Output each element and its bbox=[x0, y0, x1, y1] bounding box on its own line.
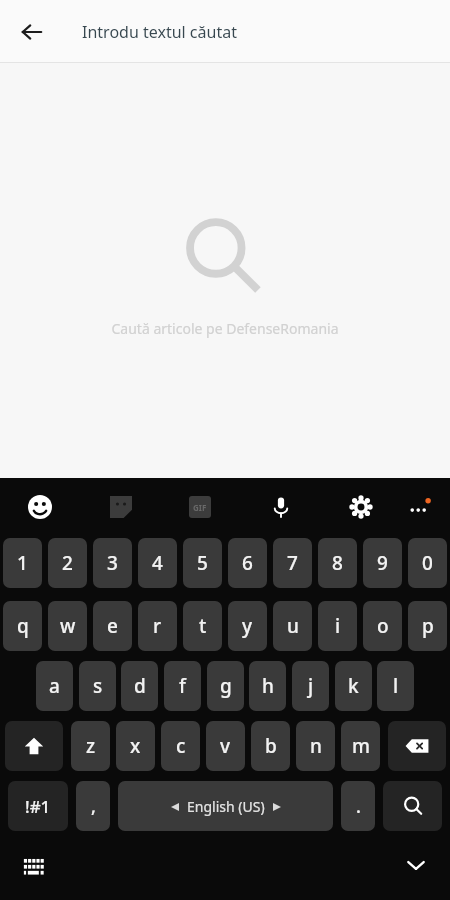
staticText: Introdu textul căutat bbox=[82, 21, 237, 43]
staticText: b bbox=[265, 733, 277, 759]
staticText: i bbox=[335, 613, 341, 639]
button[interactable]: 4 bbox=[138, 538, 177, 588]
staticText: 0 bbox=[422, 550, 433, 576]
button[interactable]: Emoji bbox=[18, 485, 62, 529]
button[interactable]: 8 bbox=[318, 538, 357, 588]
staticText: 3 bbox=[107, 550, 118, 576]
button[interactable]: Voice input bbox=[259, 485, 303, 529]
button[interactable]: m bbox=[341, 721, 380, 771]
staticText: 2 bbox=[62, 550, 73, 576]
staticText: l bbox=[393, 673, 399, 699]
staticText: g bbox=[220, 673, 232, 699]
staticText: 8 bbox=[332, 550, 343, 576]
staticText: 1 bbox=[17, 550, 28, 576]
button[interactable]: w bbox=[48, 601, 87, 651]
staticText: s bbox=[93, 673, 103, 699]
staticText: 6 bbox=[242, 550, 253, 576]
button[interactable]: . bbox=[341, 781, 375, 831]
button[interactable]: 3 bbox=[93, 538, 132, 588]
button[interactable]: 7 bbox=[273, 538, 312, 588]
staticText: f bbox=[179, 673, 186, 699]
staticText: d bbox=[134, 673, 146, 699]
staticText: p bbox=[422, 613, 434, 639]
button[interactable]: k bbox=[335, 661, 372, 711]
button[interactable]: Space bbox=[118, 781, 333, 831]
staticText: u bbox=[287, 613, 299, 639]
button[interactable]: Backspace bbox=[388, 721, 446, 771]
button[interactable]: !#1 bbox=[8, 781, 68, 831]
staticText: c bbox=[176, 733, 186, 759]
button[interactable]: i bbox=[318, 601, 357, 651]
button[interactable]: y bbox=[228, 601, 267, 651]
staticText: t bbox=[199, 613, 207, 639]
staticText: GIF bbox=[193, 502, 207, 513]
button[interactable]: g bbox=[207, 661, 244, 711]
button[interactable]: 2 bbox=[48, 538, 87, 588]
button[interactable]: a bbox=[36, 661, 73, 711]
button[interactable]: z bbox=[71, 721, 110, 771]
button[interactable]: More options bbox=[397, 485, 441, 529]
button[interactable]: b bbox=[251, 721, 290, 771]
staticText: x bbox=[130, 733, 141, 759]
button[interactable]: 0 bbox=[408, 538, 447, 588]
staticText: English (US) bbox=[187, 797, 265, 816]
button[interactable]: d bbox=[121, 661, 158, 711]
button[interactable]: Search bbox=[383, 781, 442, 831]
staticText: . bbox=[356, 794, 361, 819]
button[interactable]: s bbox=[79, 661, 116, 711]
button[interactable]: h bbox=[249, 661, 286, 711]
button[interactable]: c bbox=[161, 721, 200, 771]
button[interactable]: p bbox=[408, 601, 447, 651]
staticText: 7 bbox=[287, 550, 298, 576]
staticText: h bbox=[262, 673, 274, 699]
staticText: y bbox=[242, 613, 253, 639]
button[interactable]: x bbox=[116, 721, 155, 771]
button[interactable]: l bbox=[377, 661, 414, 711]
staticText: k bbox=[348, 673, 359, 699]
button[interactable]: e bbox=[93, 601, 132, 651]
button[interactable]: v bbox=[206, 721, 245, 771]
button[interactable]: j bbox=[292, 661, 329, 711]
button[interactable]: 9 bbox=[363, 538, 402, 588]
staticText: a bbox=[49, 673, 60, 699]
staticText: n bbox=[310, 733, 322, 759]
button[interactable]: , bbox=[76, 781, 110, 831]
button[interactable]: Back bbox=[12, 12, 52, 52]
button[interactable]: f bbox=[164, 661, 201, 711]
staticText: q bbox=[17, 613, 29, 639]
button[interactable]: n bbox=[296, 721, 335, 771]
staticText: e bbox=[107, 613, 118, 639]
button[interactable]: Shift bbox=[5, 721, 63, 771]
button[interactable]: o bbox=[363, 601, 402, 651]
staticText: v bbox=[220, 733, 231, 759]
staticText: j bbox=[308, 673, 314, 699]
button[interactable]: 1 bbox=[3, 538, 42, 588]
button[interactable]: Stickers bbox=[99, 485, 143, 529]
button[interactable]: q bbox=[3, 601, 42, 651]
staticText: r bbox=[153, 613, 162, 639]
button[interactable]: 5 bbox=[183, 538, 222, 588]
staticText: 9 bbox=[377, 550, 388, 576]
staticText: , bbox=[91, 794, 96, 819]
staticText: o bbox=[377, 613, 389, 639]
button[interactable]: Hide keyboard bbox=[396, 845, 436, 885]
button[interactable]: GIF bbox=[178, 485, 222, 529]
staticText: m bbox=[352, 733, 370, 759]
button[interactable]: t bbox=[183, 601, 222, 651]
staticText: Caută articole pe DefenseRomania bbox=[111, 319, 339, 338]
staticText: w bbox=[60, 613, 76, 639]
button[interactable]: 6 bbox=[228, 538, 267, 588]
staticText: !#1 bbox=[25, 795, 51, 818]
button[interactable]: u bbox=[273, 601, 312, 651]
staticText: z bbox=[86, 733, 96, 759]
button[interactable]: Switch keyboard bbox=[16, 848, 52, 884]
button[interactable]: r bbox=[138, 601, 177, 651]
staticText: 5 bbox=[197, 550, 208, 576]
staticText: 4 bbox=[152, 550, 163, 576]
button[interactable]: Settings bbox=[339, 485, 383, 529]
